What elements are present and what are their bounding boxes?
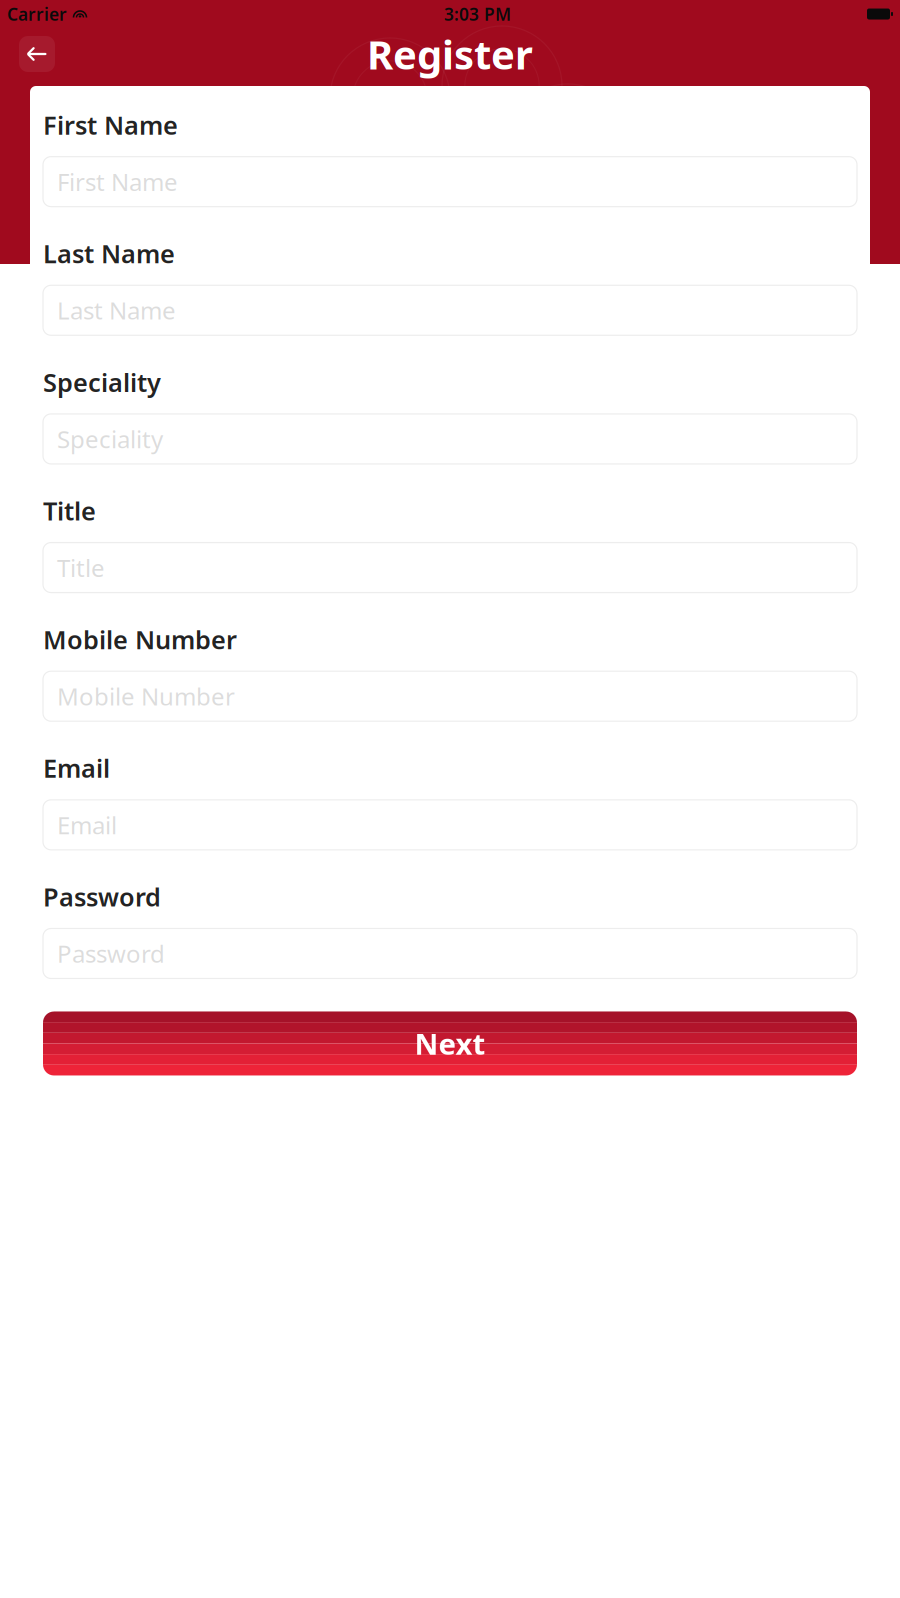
button[interactable]: Next [43, 1011, 857, 1075]
staticText: Speciality [43, 365, 161, 399]
button[interactable]: Last Name [43, 285, 857, 335]
button[interactable]: First Name [43, 157, 857, 207]
button[interactable]: Title [43, 543, 857, 593]
staticText: Mobile Number [57, 680, 235, 712]
staticText: Carrier [7, 2, 67, 25]
staticText: Speciality [57, 423, 163, 455]
button[interactable]: Email [43, 800, 857, 850]
button[interactable]: Speciality [43, 414, 857, 464]
staticText: Email [43, 751, 110, 785]
staticText: Title [43, 494, 96, 527]
staticText: Last Name [57, 294, 176, 326]
staticText: Register [367, 27, 533, 80]
button[interactable]: Back [19, 36, 55, 72]
staticText: First Name [43, 108, 178, 142]
button[interactable]: Password [43, 928, 857, 978]
staticText: Next [414, 1024, 485, 1063]
staticText: Title [57, 552, 105, 583]
staticText: Mobile Number [43, 623, 237, 656]
staticText: Password [43, 880, 161, 913]
staticText: First Name [57, 166, 178, 198]
staticText: Last Name [43, 237, 175, 270]
button[interactable]: Mobile Number [43, 671, 857, 721]
staticText: 3:03 PM [444, 2, 511, 25]
staticText: Email [57, 809, 117, 841]
staticText: Password [57, 938, 165, 969]
